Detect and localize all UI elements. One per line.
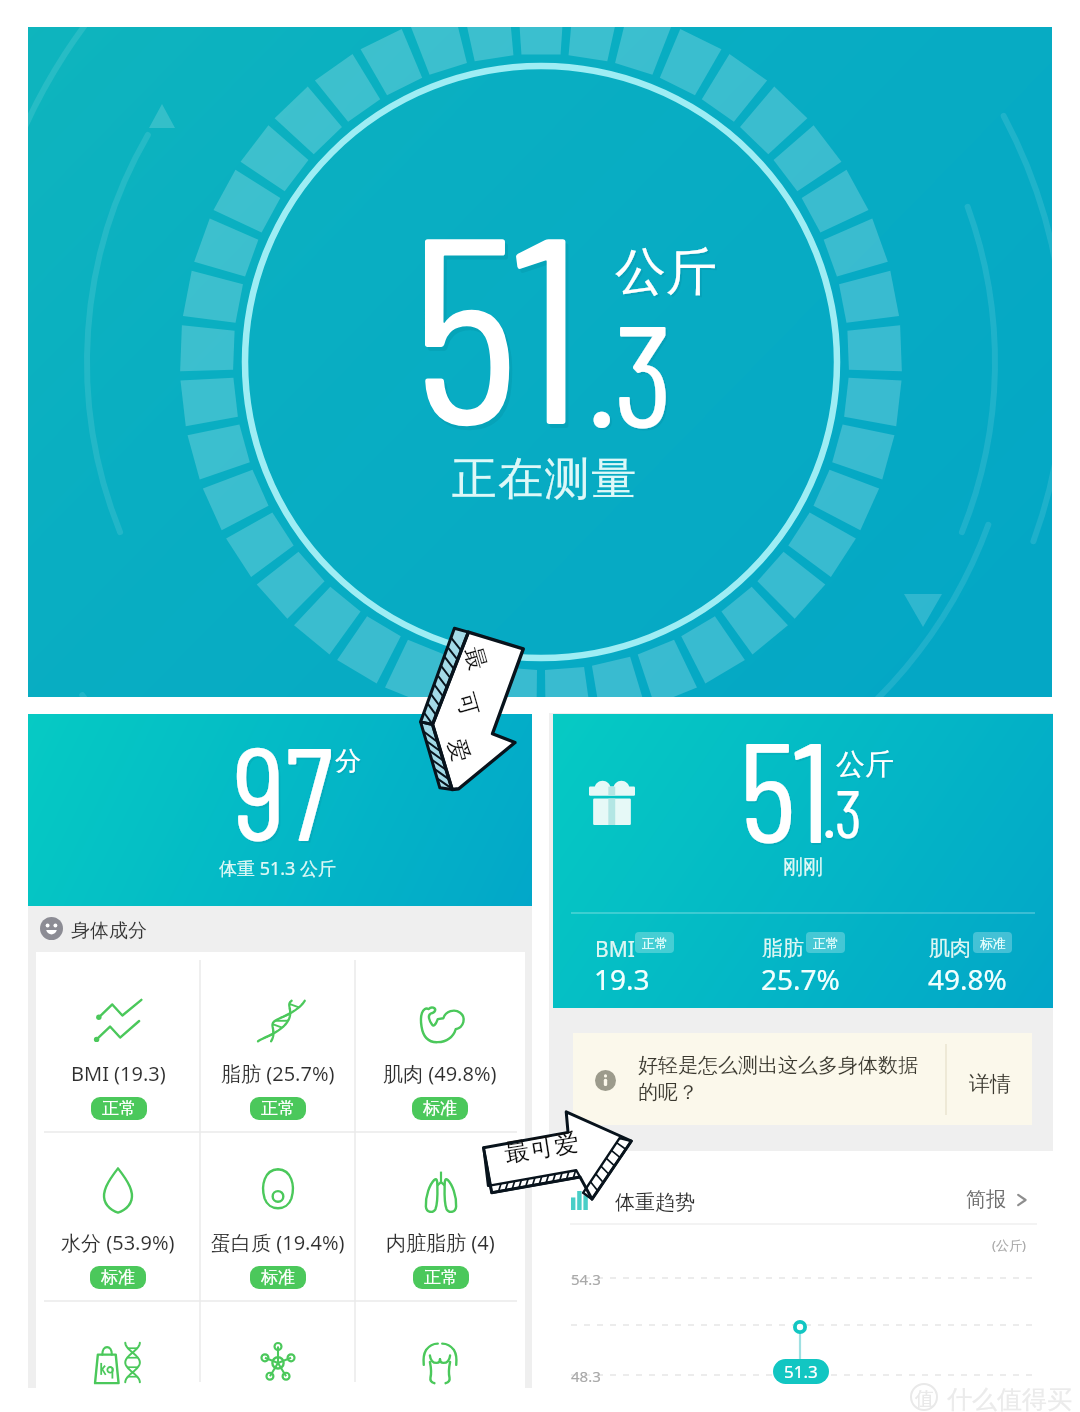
staticText: 内脏脂肪 (4) bbox=[386, 1229, 495, 1256]
staticText: BMI bbox=[595, 935, 635, 964]
button[interactable]: 脂肪 (25.7%) bbox=[200, 952, 355, 1121]
staticText: 脂肪 (25.7%) bbox=[221, 1060, 335, 1087]
staticText: 48.3 bbox=[571, 1366, 601, 1386]
staticText: 51 bbox=[414, 164, 585, 481]
staticText: 爱 bbox=[441, 735, 476, 765]
staticText: 标准 bbox=[423, 1098, 457, 1119]
staticText: 97 bbox=[235, 713, 335, 869]
button[interactable] bbox=[36, 1301, 200, 1388]
staticText: 脂肪 bbox=[762, 935, 804, 961]
staticText: 49.8% bbox=[928, 960, 1007, 998]
staticText: 3 bbox=[616, 285, 676, 459]
button[interactable]: 肌肉 (49.8%) bbox=[355, 952, 525, 1121]
staticText: 标准 bbox=[980, 935, 1006, 951]
button[interactable]: 内脏脂肪 (4) bbox=[355, 1121, 525, 1290]
staticText: 正常 bbox=[102, 1098, 136, 1119]
other: Annotation arrow bbox=[418, 624, 530, 796]
staticText: 3 bbox=[835, 772, 862, 851]
staticText: 最可爱 bbox=[502, 1126, 581, 1169]
other: Annotation arrow bbox=[482, 1110, 634, 1202]
staticText: 正常 bbox=[424, 1267, 458, 1288]
staticText: 体重趋势 bbox=[615, 1190, 695, 1215]
staticText: 分 bbox=[336, 747, 362, 780]
staticText: 详情 bbox=[969, 1071, 1011, 1097]
button[interactable]: 脂肪 bbox=[762, 932, 912, 994]
staticText: . bbox=[588, 283, 616, 457]
button[interactable]: BMI (19.3) bbox=[36, 952, 200, 1121]
staticText: (公斤) bbox=[992, 1236, 1026, 1254]
staticText: 51.3 bbox=[784, 1360, 818, 1383]
staticText: 标准 bbox=[261, 1267, 295, 1288]
staticText: 体重 51.3 公斤 bbox=[219, 856, 337, 881]
staticText: 刚刚 bbox=[783, 855, 823, 880]
staticText: 25.7% bbox=[761, 960, 840, 998]
staticText: 正在测量 bbox=[451, 451, 637, 508]
staticText: . bbox=[824, 774, 837, 853]
staticText: 公斤 bbox=[836, 746, 894, 783]
staticText: 标准 bbox=[101, 1267, 135, 1288]
staticText: 分 bbox=[335, 745, 361, 778]
button[interactable]: 蛋白质 (19.4%) bbox=[200, 1121, 355, 1290]
button[interactable] bbox=[200, 1301, 355, 1388]
staticText: 值 bbox=[915, 1387, 934, 1411]
button[interactable]: 肌肉 bbox=[929, 932, 1079, 994]
staticText: 51 bbox=[739, 703, 830, 871]
staticText: 肌肉 (49.8%) bbox=[383, 1060, 497, 1087]
staticText: 正常 bbox=[813, 935, 839, 951]
staticText: . bbox=[823, 772, 836, 851]
staticText: 什么值得买 bbox=[947, 1384, 1072, 1412]
staticText: 公斤 bbox=[617, 242, 719, 306]
staticText: 简报 bbox=[966, 1187, 1006, 1212]
button[interactable]: 简报 bbox=[966, 1187, 1028, 1212]
staticText: 3 bbox=[836, 774, 863, 853]
staticText: 54.3 bbox=[571, 1269, 601, 1289]
button[interactable] bbox=[355, 1301, 525, 1388]
staticText: 51 bbox=[411, 160, 582, 477]
staticText: 19.3 bbox=[594, 960, 650, 998]
staticText: 蛋白质 (19.4%) bbox=[211, 1229, 345, 1256]
staticText: 身体成分 bbox=[71, 919, 147, 943]
staticText: 97 bbox=[233, 711, 333, 867]
staticText: 3 bbox=[614, 283, 674, 457]
button[interactable]: 水分 (53.9%) bbox=[36, 1121, 200, 1290]
button[interactable]: 好轻是怎么测出这么多身体数据的呢？ bbox=[573, 1033, 1032, 1125]
staticText: 正常 bbox=[261, 1098, 295, 1119]
staticText: 水分 (53.9%) bbox=[61, 1229, 175, 1256]
staticText: 肌肉 bbox=[929, 935, 971, 961]
other: Gift bbox=[589, 777, 635, 825]
staticText: BMI (19.3) bbox=[71, 1060, 166, 1087]
staticText: 正常 bbox=[642, 935, 668, 951]
staticText: . bbox=[590, 285, 618, 459]
button[interactable]: BMI bbox=[595, 932, 745, 994]
staticText: 公斤 bbox=[615, 240, 717, 304]
staticText: 51 bbox=[740, 705, 831, 873]
staticText: 可 bbox=[450, 689, 485, 719]
staticText: 公斤 bbox=[837, 748, 895, 785]
staticText: 最 bbox=[458, 643, 493, 673]
staticText: 好轻是怎么测出这么多身体数据的呢？ bbox=[638, 1053, 930, 1105]
